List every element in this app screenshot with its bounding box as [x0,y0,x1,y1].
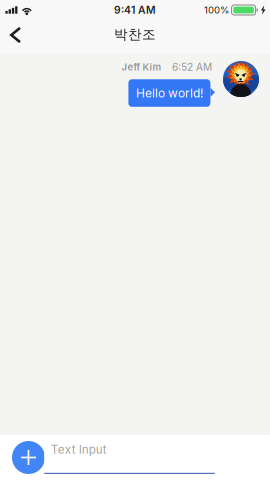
staticText: Hello world! [136,86,203,100]
staticText: 100% [204,4,229,16]
button[interactable]: Add attachment [12,441,45,474]
staticText: 박찬조 [114,26,156,43]
staticText: 9:41 AM [114,4,156,16]
button[interactable]: Text Input [44,444,215,473]
staticText: Jeff Kim [121,61,161,73]
staticText: 6:52 AM [172,61,212,73]
staticText: Text Input [51,442,107,457]
button[interactable]: Back [0,20,42,54]
